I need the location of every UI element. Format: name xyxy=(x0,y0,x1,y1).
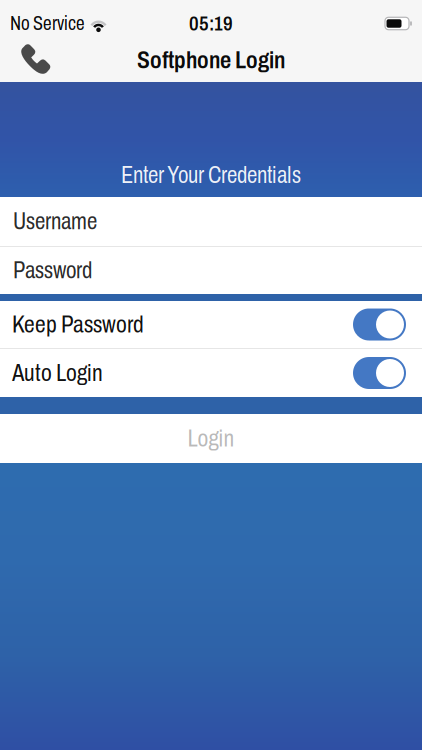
staticText: 05:19 xyxy=(189,12,233,35)
button[interactable]: Auto Login xyxy=(0,349,422,397)
button[interactable]: Login xyxy=(0,414,422,463)
staticText: Keep Password xyxy=(12,311,144,337)
button[interactable]: Keep Password xyxy=(0,301,422,348)
staticText: Login xyxy=(187,425,234,451)
button[interactable]: Dialer xyxy=(0,38,61,81)
staticText: Softphone Login xyxy=(137,47,285,73)
button[interactable]: Password xyxy=(0,247,422,294)
staticText: Password xyxy=(13,258,92,283)
staticText: No Service xyxy=(10,13,85,34)
button[interactable]: Username xyxy=(0,197,422,246)
staticText: Auto Login xyxy=(12,360,103,386)
staticText: Username xyxy=(13,209,97,234)
staticText: Enter Your Credentials xyxy=(121,163,301,188)
